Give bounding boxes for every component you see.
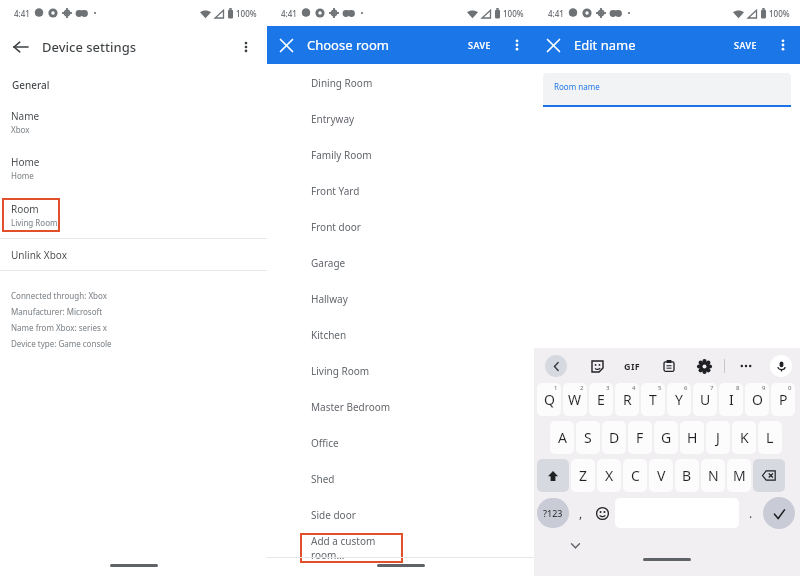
button[interactable]: Master Bedroom — [267, 389, 534, 425]
button[interactable]: Unlink Xbox — [0, 239, 267, 270]
staticText: Office — [311, 436, 339, 450]
staticText: 3 — [606, 384, 610, 392]
button[interactable]: ?123 — [537, 498, 569, 528]
button[interactable]: T — [641, 383, 665, 416]
button[interactable]: Back — [545, 355, 567, 377]
button[interactable]: Office — [267, 425, 534, 461]
button[interactable]: Front Yard — [267, 173, 534, 209]
button[interactable]: GIF — [624, 360, 641, 372]
button[interactable]: Backspace — [753, 459, 785, 492]
button[interactable]: H — [680, 421, 704, 454]
button[interactable]: Settings — [694, 356, 714, 376]
button[interactable]: E — [589, 383, 613, 416]
button[interactable]: Shed — [267, 461, 534, 497]
button[interactable]: Room — [2, 198, 60, 232]
button[interactable]: U — [693, 383, 717, 416]
button[interactable]: Shift — [537, 459, 569, 492]
button[interactable]: I — [719, 383, 743, 416]
button[interactable]: O — [745, 383, 769, 416]
button[interactable]: Period — [741, 498, 761, 528]
button[interactable]: Y — [667, 383, 691, 416]
staticText: V — [657, 466, 666, 485]
button[interactable]: Living Room — [267, 353, 534, 389]
button[interactable]: Name — [0, 109, 267, 135]
staticText: Garage — [311, 256, 346, 270]
staticText: 100% — [769, 8, 790, 19]
button[interactable]: Emoji — [591, 498, 613, 528]
staticText: M — [733, 466, 746, 485]
button[interactable]: Home — [0, 155, 267, 181]
button[interactable]: More options — [500, 28, 534, 62]
staticText: Dining Room — [311, 76, 373, 90]
button[interactable]: X — [597, 459, 621, 492]
button[interactable]: More options — [225, 26, 267, 68]
staticText: SAVE — [468, 39, 492, 51]
button[interactable]: Side door — [267, 497, 534, 533]
staticText: P — [779, 390, 788, 409]
staticText: General — [12, 78, 50, 92]
button[interactable]: F — [628, 421, 652, 454]
staticText: G — [661, 428, 672, 447]
button[interactable]: Family Room — [267, 137, 534, 173]
staticText: 100% — [236, 8, 257, 19]
staticText: J — [716, 428, 720, 447]
button[interactable]: W — [563, 383, 587, 416]
button[interactable]: N — [701, 459, 725, 492]
button[interactable]: S — [576, 421, 600, 454]
button[interactable]: B — [675, 459, 699, 492]
button[interactable]: Entryway — [267, 101, 534, 137]
button[interactable]: L — [758, 421, 782, 454]
button[interactable]: P — [771, 383, 795, 416]
staticText: Living Room — [311, 364, 370, 378]
button[interactable]: J — [706, 421, 730, 454]
button[interactable]: More options — [766, 28, 800, 62]
staticText: U — [700, 390, 711, 409]
button[interactable]: Room name — [543, 73, 791, 105]
button[interactable]: Dining Room — [267, 65, 534, 101]
button[interactable]: C — [623, 459, 647, 492]
staticText: X — [605, 466, 614, 485]
staticText: Front door — [311, 220, 361, 234]
button[interactable]: Hide keyboard — [567, 537, 583, 553]
button[interactable]: Enter — [763, 497, 795, 529]
button[interactable]: More — [736, 356, 756, 376]
staticText: Home — [11, 155, 40, 169]
button[interactable]: Garage — [267, 245, 534, 281]
button[interactable]: Voice input — [770, 355, 792, 377]
button[interactable]: Z — [571, 459, 595, 492]
staticText: K — [740, 428, 749, 447]
button[interactable]: G — [654, 421, 678, 454]
button[interactable]: Close — [267, 26, 305, 64]
button[interactable]: A — [550, 421, 574, 454]
button[interactable]: Close — [534, 26, 572, 64]
staticText: Device type: Game console — [11, 338, 112, 349]
staticText: 8 — [736, 384, 740, 392]
staticText: Device settings — [42, 38, 137, 56]
staticText: 4:41 — [548, 8, 564, 19]
staticText: Kitchen — [311, 328, 347, 342]
button[interactable]: Clipboard — [659, 356, 679, 376]
button[interactable]: K — [732, 421, 756, 454]
button[interactable]: V — [649, 459, 673, 492]
button[interactable]: SAVE — [460, 33, 500, 57]
button[interactable]: M — [727, 459, 751, 492]
staticText: N — [708, 466, 719, 485]
button[interactable]: D — [602, 421, 626, 454]
staticText: Add a custom room... — [311, 534, 403, 562]
staticText: C — [631, 466, 640, 485]
button[interactable]: Kitchen — [267, 317, 534, 353]
button[interactable]: SAVE — [726, 33, 766, 57]
staticText: Home — [11, 170, 34, 181]
button[interactable]: Front door — [267, 209, 534, 245]
button[interactable]: Q — [537, 383, 561, 416]
button[interactable]: Stickers — [587, 356, 607, 376]
staticText: R — [623, 390, 632, 409]
button[interactable]: R — [615, 383, 639, 416]
staticText: 2 — [580, 384, 584, 392]
button[interactable]: Comma — [571, 498, 590, 528]
staticText: 5 — [658, 384, 662, 392]
button[interactable]: Add a custom room... — [300, 533, 403, 563]
button[interactable]: Back — [0, 26, 42, 68]
button[interactable]: Hallway — [267, 281, 534, 317]
